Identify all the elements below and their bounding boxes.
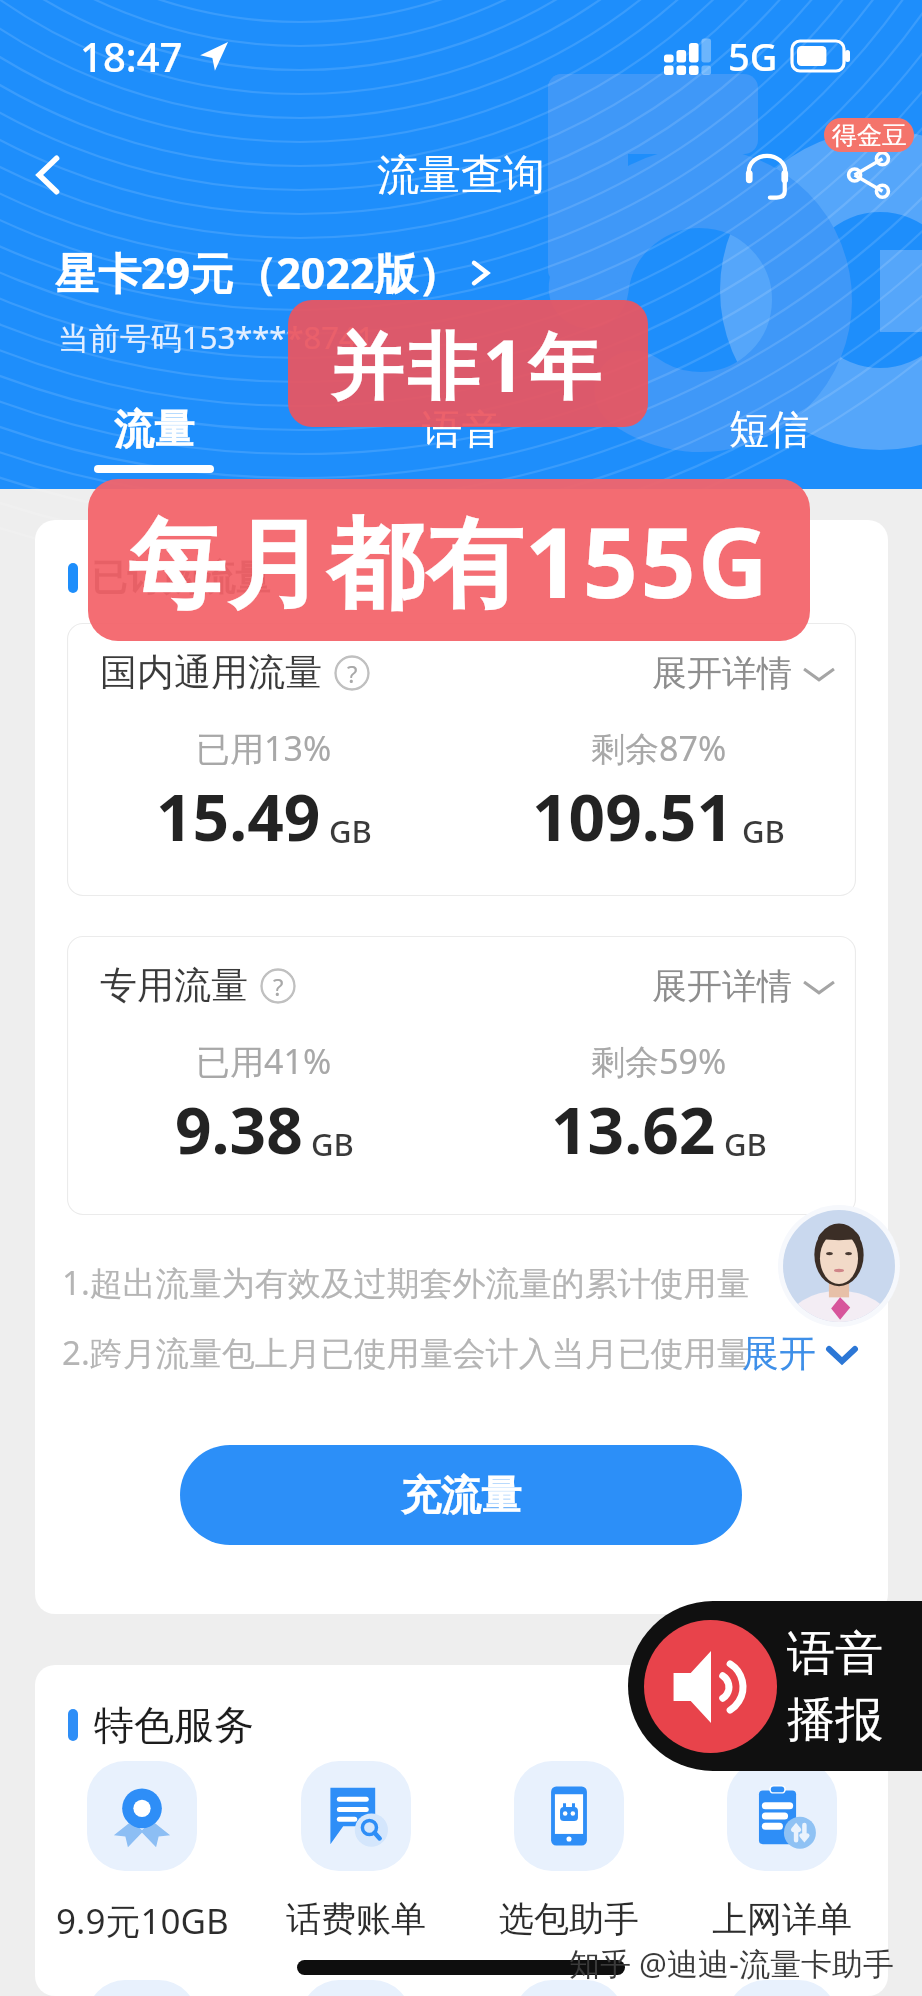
staticText: 展开 (742, 1330, 816, 1377)
staticText: 星卡29元（2022版） (55, 243, 461, 302)
staticText: 流量查询 (377, 149, 545, 202)
staticText: GB (311, 1123, 354, 1165)
staticText: 9.9元10GB (56, 1897, 229, 1945)
staticText: 语音 (787, 1624, 883, 1684)
staticText: 13.62 (551, 1086, 716, 1173)
button[interactable]: 话费账单 (249, 1761, 462, 1941)
staticText: 充流量 (401, 1470, 521, 1520)
staticText: 9.38 (175, 1086, 303, 1173)
button[interactable]: 得金豆 (824, 118, 914, 152)
staticText: ? (347, 657, 358, 690)
staticText: GB (742, 810, 785, 852)
staticText: 每月都有155G (128, 494, 771, 626)
button[interactable]: Voice broadcast (628, 1601, 922, 1771)
staticText: 并非1年 (331, 315, 605, 413)
staticText: 国内通用流量 (100, 649, 322, 696)
staticText: 流量 (114, 404, 194, 454)
staticText: 剩余59% (591, 1038, 727, 1084)
staticText: 当前号码153****8741 (58, 316, 375, 358)
staticText: 上网详单 (712, 1897, 852, 1941)
button[interactable]: Help (334, 655, 370, 691)
staticText: GB (329, 810, 372, 852)
button[interactable]: Assistant (778, 1205, 900, 1327)
staticText: 2.跨月流量包上月已使用量会计入当月已使用量 (62, 1330, 750, 1375)
button[interactable]: 短信 (615, 404, 922, 489)
staticText: GB (724, 1123, 767, 1165)
button[interactable]: 上网详单 (675, 1761, 888, 1941)
staticText: 得金豆 (832, 120, 907, 151)
staticText: 专用流量 (100, 962, 248, 1009)
staticText: 剩余87% (591, 725, 727, 771)
button[interactable]: Customer service (734, 142, 800, 208)
button[interactable]: 9.9元10GB (35, 1761, 249, 1945)
button[interactable]: 展开 (742, 1330, 860, 1377)
staticText: 15.49 (156, 773, 321, 860)
staticText: 特色服务 (94, 1700, 254, 1750)
button[interactable]: Back (14, 140, 84, 210)
staticText: 知乎 @迪迪-流量卡助手 (569, 1942, 894, 1984)
staticText: 展开详情 (652, 964, 792, 1008)
staticText: 选包助手 (499, 1897, 639, 1941)
staticText: 已订购流量 (91, 555, 271, 600)
button[interactable]: 流量 (0, 404, 308, 489)
staticText: 已用13% (196, 725, 332, 771)
button[interactable]: 语音 (308, 404, 615, 489)
button[interactable]: 展开详情 (652, 964, 836, 1008)
button[interactable]: 选包助手 (462, 1761, 675, 1941)
staticText: 1.超出流量为有效及过期套外流量的累计使用量 (62, 1260, 750, 1305)
staticText: 短信 (729, 404, 809, 454)
button[interactable]: Share (836, 142, 902, 208)
staticText: 18:47 (80, 29, 183, 83)
staticText: 5G (728, 30, 778, 82)
staticText: 播报 (787, 1690, 883, 1750)
staticText: 109.51 (532, 773, 734, 860)
button[interactable]: 展开详情 (652, 651, 836, 695)
staticText: 展开详情 (652, 651, 792, 695)
button[interactable]: 充流量 (180, 1445, 742, 1545)
button[interactable]: 星卡29元（2022版） (55, 243, 495, 302)
staticText: 已用41% (196, 1038, 332, 1084)
button[interactable]: Help (260, 968, 296, 1004)
staticText: 话费账单 (286, 1897, 426, 1941)
staticText: ? (273, 970, 284, 1003)
staticText: 语音 (422, 404, 502, 454)
